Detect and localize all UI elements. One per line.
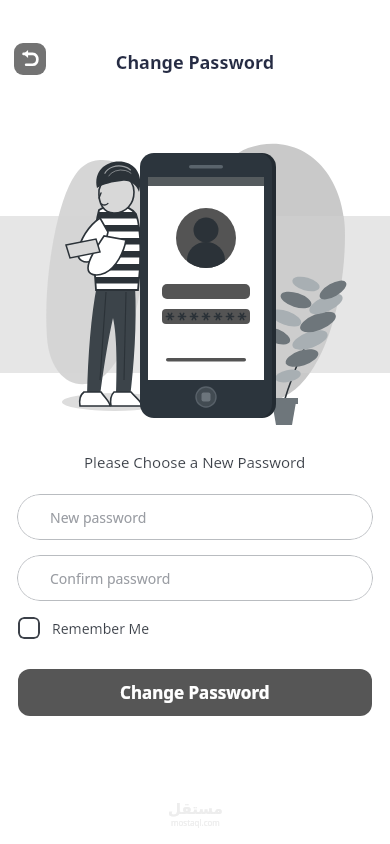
staticText: Change Password: [120, 681, 270, 704]
staticText: مستقل: [168, 800, 223, 817]
staticText: Confirm password: [50, 569, 171, 588]
button[interactable]: Change Password: [18, 669, 372, 716]
button[interactable]: Confirm password: [17, 555, 373, 601]
staticText: Please Choose a New Password: [84, 452, 306, 472]
staticText: Change Password: [0, 50, 390, 75]
staticText: New password: [50, 508, 147, 527]
button[interactable]: Remember Me: [18, 617, 372, 639]
button[interactable]: Back: [14, 43, 46, 75]
staticText: mostaql.com: [171, 817, 220, 828]
button[interactable]: New password: [17, 494, 373, 540]
staticText: Remember Me: [52, 619, 150, 638]
